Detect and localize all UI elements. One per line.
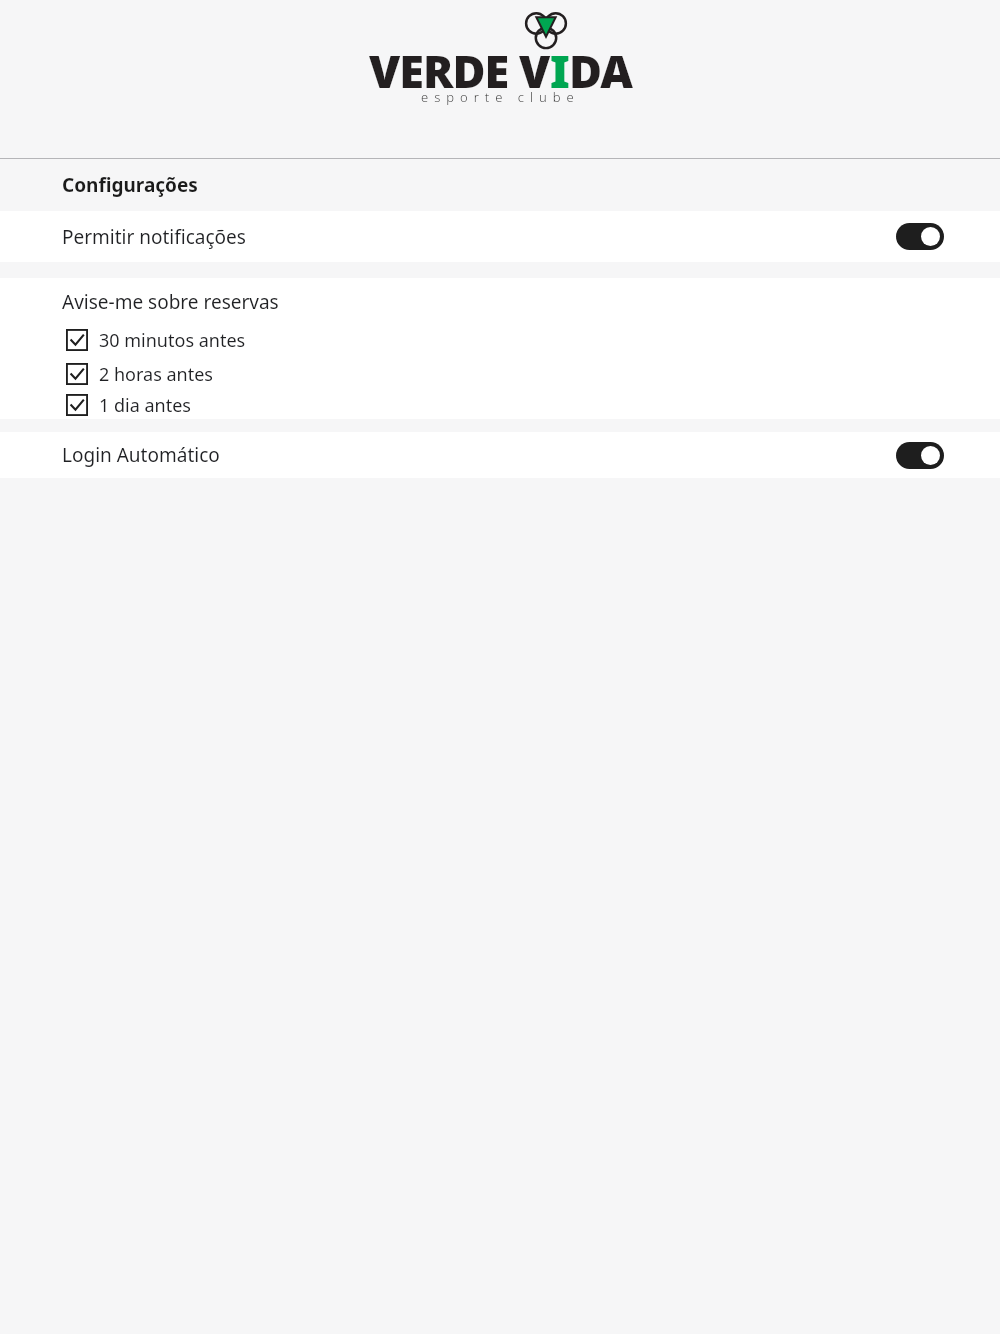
staticText: 30 minutos antes [99, 328, 246, 353]
button[interactable]: Login Automático [896, 442, 944, 469]
staticText: DA [569, 40, 632, 101]
staticText: 2 horas antes [99, 362, 213, 387]
button[interactable]: Permitir notificações [0, 211, 1000, 262]
staticText: Permitir notificações [62, 224, 246, 250]
button[interactable]: 30 minutos antes [0, 323, 1000, 357]
staticText: I [550, 40, 569, 101]
button[interactable]: Login Automático [0, 432, 1000, 478]
button[interactable]: Permitir notificações [896, 223, 944, 250]
staticText: Avise-me sobre reservas [62, 289, 279, 315]
staticText: V [519, 40, 550, 101]
staticText: esporte clube [421, 88, 580, 106]
button[interactable]: 1 dia antes [0, 391, 1000, 419]
button[interactable]: 2 horas antes [0, 357, 1000, 391]
staticText: Login Automático [62, 442, 220, 468]
staticText: 1 dia antes [99, 393, 191, 418]
staticText: Configurações [62, 172, 198, 198]
staticText: VERDE [369, 40, 519, 101]
